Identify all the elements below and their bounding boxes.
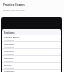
button[interactable]: Geometry	[2, 42, 61, 48]
button[interactable]	[1, 17, 62, 29]
staticText: Practice Exams	[3, 3, 25, 7]
button[interactable]: Calculus I	[2, 49, 61, 55]
staticText: Physics	[4, 64, 12, 67]
staticText: 16 questions	[4, 67, 15, 69]
staticText: Statistics	[4, 57, 14, 60]
button[interactable]: Chemistry	[2, 70, 61, 72]
staticText: Algebra Basics	[4, 36, 20, 39]
staticText: 8 questions	[4, 60, 14, 62]
staticText: ›	[59, 51, 60, 54]
button[interactable]: Algebra Basics	[2, 35, 61, 41]
staticText: ›	[59, 58, 60, 61]
staticText: Geometry	[4, 43, 15, 46]
staticText: 12 questions	[4, 39, 15, 41]
staticText: ›	[59, 37, 60, 40]
staticText: ›	[59, 65, 60, 68]
staticText: Sharpen your skills daily	[3, 9, 25, 12]
button[interactable]: Statistics	[2, 56, 61, 62]
button[interactable]: Physics	[2, 63, 61, 69]
staticText: 14 questions	[4, 53, 15, 55]
staticText: Chemistry	[4, 70, 15, 72]
staticText: Sections	[4, 31, 15, 34]
staticText: 10 questions	[4, 46, 15, 48]
staticText: Calculus I	[4, 50, 15, 53]
staticText: ›	[59, 44, 60, 47]
